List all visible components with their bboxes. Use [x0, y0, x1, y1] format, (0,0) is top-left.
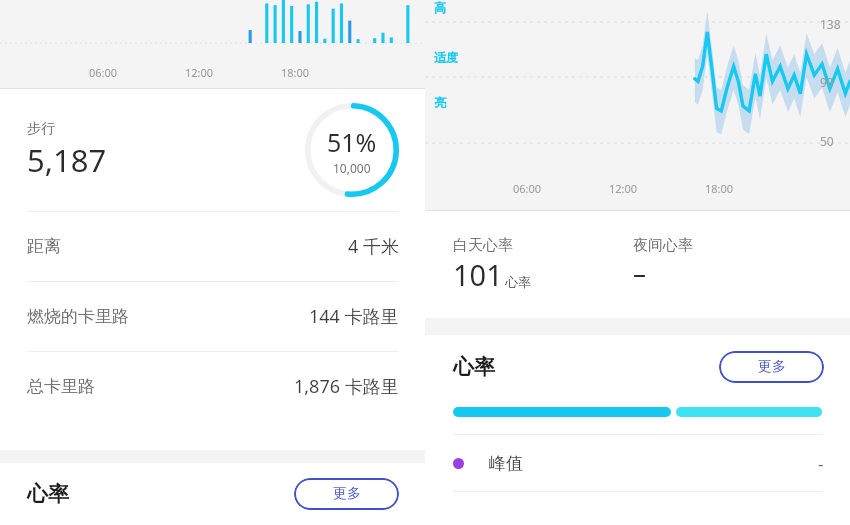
staticText: 5,187 [27, 139, 107, 181]
staticText: 18:00 [705, 181, 734, 196]
staticText: 06:00 [513, 181, 542, 196]
staticText: 心率 [453, 354, 495, 380]
staticText: 10,000 [333, 160, 371, 176]
staticText: 18:00 [281, 65, 310, 80]
staticText: 心率 [27, 481, 69, 507]
staticText: 51% [327, 125, 377, 159]
button[interactable]: 峰值 [425, 435, 850, 491]
staticText: 心率 [505, 274, 531, 290]
staticText: 适度 [434, 50, 458, 65]
staticText: 12:00 [185, 65, 214, 80]
staticText: 更多 [333, 485, 361, 503]
staticText: 亮 [434, 95, 446, 110]
staticText: 白天心率 [453, 236, 513, 255]
staticText: 50 [820, 133, 834, 149]
staticText: – [633, 255, 647, 290]
button[interactable]: 更多 [719, 351, 824, 383]
staticText: 138 [820, 16, 841, 32]
staticText: 101 [453, 255, 503, 294]
staticText: 1,876 卡路里 [294, 374, 399, 399]
button[interactable]: 燃烧的卡里路 [0, 281, 425, 351]
staticText: 距离 [27, 236, 61, 257]
staticText: 步行 [27, 120, 55, 138]
staticText: 夜间心率 [633, 236, 693, 255]
staticText: 燃烧的卡里路 [27, 306, 129, 327]
button[interactable]: 距离 [0, 211, 425, 281]
staticText: 高 [434, 0, 446, 15]
staticText: 12:00 [609, 181, 638, 196]
button[interactable]: 步行 [0, 89, 425, 211]
staticText: 99 [820, 74, 834, 90]
staticText: 总卡里路 [27, 376, 95, 397]
staticText: 峰值 [489, 453, 523, 474]
button[interactable]: 更多 [294, 478, 399, 510]
staticText: - [818, 452, 824, 475]
staticText: 06:00 [89, 65, 118, 80]
staticText: 更多 [758, 358, 786, 376]
staticText: 144 卡路里 [309, 304, 399, 329]
staticText: 4 千米 [348, 234, 399, 259]
button[interactable]: 总卡里路 [0, 351, 425, 421]
